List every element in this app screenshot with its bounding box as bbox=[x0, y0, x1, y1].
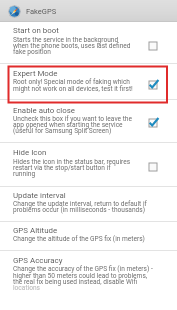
staticText: when the phone boots, uses last defined bbox=[13, 42, 131, 50]
staticText: Change the accuracy of the GPS fix (in m… bbox=[13, 265, 153, 273]
staticText: running bbox=[13, 170, 36, 178]
staticText: Root only! Special mode of faking which bbox=[13, 78, 130, 86]
staticText: Hide Icon bbox=[13, 148, 47, 157]
staticText: might not work on all devices, test it f… bbox=[13, 85, 133, 93]
staticText: Update interval bbox=[13, 191, 66, 200]
staticText: app opened when starting the service bbox=[13, 121, 123, 129]
button[interactable] bbox=[0, 64, 177, 99]
staticText: Starts the service in the background bbox=[13, 36, 119, 44]
staticText: FakeGPS bbox=[26, 7, 57, 16]
staticText: restart via the stop/start button if bbox=[13, 164, 111, 172]
staticText: Enable auto close bbox=[13, 106, 76, 115]
button[interactable]: Toggle Enable auto close bbox=[141, 113, 165, 133]
staticText: (useful for Samsung Split Screen) bbox=[13, 127, 112, 135]
staticText: Change the update interval, return to de… bbox=[13, 200, 147, 208]
button[interactable] bbox=[0, 101, 177, 142]
staticText: fake position bbox=[13, 48, 51, 56]
staticText: the real fix being used instead, disable… bbox=[13, 278, 138, 286]
staticText: GPS Accuracy bbox=[13, 256, 63, 265]
button[interactable] bbox=[0, 221, 177, 250]
staticText: Start on boot bbox=[13, 26, 59, 35]
button[interactable]: Toggle Start on boot bbox=[141, 36, 165, 56]
button[interactable]: FakeGPS app icon bbox=[2, 2, 24, 20]
staticText: locations bbox=[13, 284, 40, 292]
staticText: Uncheck this box if you want to leave th… bbox=[13, 115, 132, 123]
staticText: Hides the icon in the status bar, requir… bbox=[13, 158, 131, 166]
button[interactable] bbox=[0, 186, 177, 221]
button[interactable] bbox=[0, 251, 177, 300]
button[interactable] bbox=[0, 143, 177, 186]
staticText: Expert Mode bbox=[13, 69, 58, 78]
staticText: higher than 50 meters could lead to prob… bbox=[13, 272, 148, 280]
staticText: problems occur (in milliseconds - thousa… bbox=[13, 206, 145, 214]
button[interactable]: Toggle Hide Icon bbox=[141, 157, 165, 177]
button[interactable] bbox=[0, 21, 177, 63]
staticText: GPS Altitude bbox=[13, 226, 58, 235]
staticText: Change the altitude of the GPS fix (in m… bbox=[13, 235, 145, 243]
button[interactable]: Toggle Expert Mode bbox=[141, 75, 165, 95]
